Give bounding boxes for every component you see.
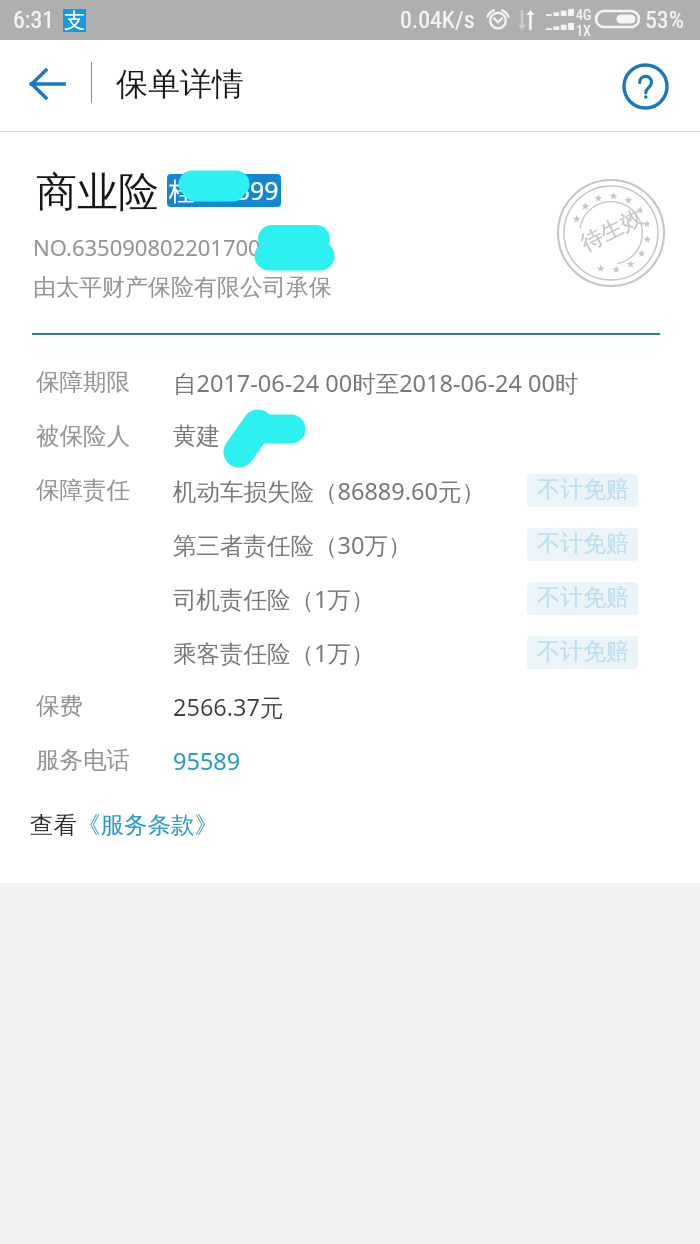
- staticText: 服务电话: [36, 745, 130, 775]
- staticText: 黄建: [173, 421, 220, 451]
- staticText: 53%: [645, 6, 684, 34]
- staticText: 支: [64, 8, 85, 31]
- staticText: 不计免赔: [537, 583, 629, 612]
- staticText: 待生效: [576, 203, 648, 258]
- staticText: 由太平财产保险有限公司承保: [33, 273, 332, 302]
- staticText: 司机责任险（1万）: [173, 583, 375, 615]
- staticText: 被保险人: [36, 421, 130, 451]
- button[interactable]: 不计免赔: [527, 528, 638, 561]
- staticText: 0.04K/s: [400, 6, 475, 34]
- button[interactable]: 不计免赔: [527, 474, 638, 507]
- staticText: 不计免赔: [537, 529, 629, 558]
- staticText: 桂L12399: [169, 174, 279, 206]
- staticText: 保单详情: [116, 64, 244, 104]
- button[interactable]: Back: [12, 38, 82, 129]
- staticText: 不计免赔: [537, 475, 629, 504]
- button[interactable]: 不计免赔: [527, 582, 638, 615]
- staticText: 2566.37元: [173, 691, 284, 723]
- staticText: 保障责任: [36, 475, 130, 505]
- staticText: 自2017-06-24 00时至2018-06-24 00时: [173, 367, 579, 399]
- staticText: 乘客责任险（1万）: [173, 637, 375, 669]
- staticText: NO.6350908022017000000: [33, 232, 312, 262]
- staticText: 机动车损失险（86889.60元）: [173, 475, 485, 507]
- staticText: 保费: [36, 691, 83, 721]
- staticText: 1X: [576, 23, 591, 39]
- button[interactable]: 不计免赔: [527, 636, 638, 669]
- staticText: 查看: [30, 810, 77, 840]
- button[interactable]: 查看: [26, 806, 222, 844]
- staticText: 4G: [576, 7, 592, 23]
- staticText: 《服务条款》: [77, 810, 218, 840]
- staticText: 95589: [173, 745, 241, 777]
- staticText: 第三者责任险（30万）: [173, 529, 412, 561]
- staticText: 6:31: [13, 6, 55, 34]
- staticText: 不计免赔: [537, 637, 629, 666]
- button[interactable]: Help: [608, 49, 682, 123]
- staticText: 保障期限: [36, 367, 130, 397]
- staticText: 商业险: [36, 167, 159, 219]
